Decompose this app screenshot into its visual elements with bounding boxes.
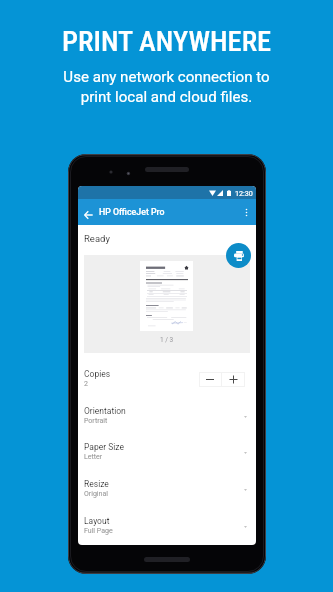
staticText: Orientation [84, 406, 126, 416]
staticText: 2 [84, 380, 88, 388]
button[interactable]: Copies [78, 362, 256, 399]
staticText: Copies [84, 369, 111, 379]
staticText: 1 / 3 [160, 336, 174, 344]
button[interactable]: Decrease copies [199, 372, 221, 387]
staticText: Full Page [84, 527, 113, 535]
staticText: 12:30 [235, 189, 253, 197]
button[interactable]: Layout [78, 509, 256, 545]
staticText: Resize [84, 479, 109, 489]
staticText: Letter [84, 453, 103, 461]
button[interactable]: Orientation [78, 399, 256, 436]
staticText: Layout [84, 516, 110, 526]
button[interactable]: Increase copies [222, 372, 245, 387]
button[interactable]: Print [226, 243, 251, 268]
staticText: Portrait [84, 417, 108, 425]
staticText: PRINT ANYWHERE [62, 25, 272, 58]
staticText: Use any network connection to print loca… [63, 68, 270, 106]
staticText: Ready [84, 233, 110, 244]
button[interactable]: Resize [78, 472, 256, 509]
staticText: Original [84, 490, 108, 498]
staticText: Paper Size [84, 442, 124, 452]
staticText: HP OfficeJet Pro [99, 207, 165, 217]
button[interactable]: Paper Size [78, 435, 256, 472]
button[interactable]: Back [78, 199, 98, 225]
button[interactable]: More options [238, 199, 254, 225]
